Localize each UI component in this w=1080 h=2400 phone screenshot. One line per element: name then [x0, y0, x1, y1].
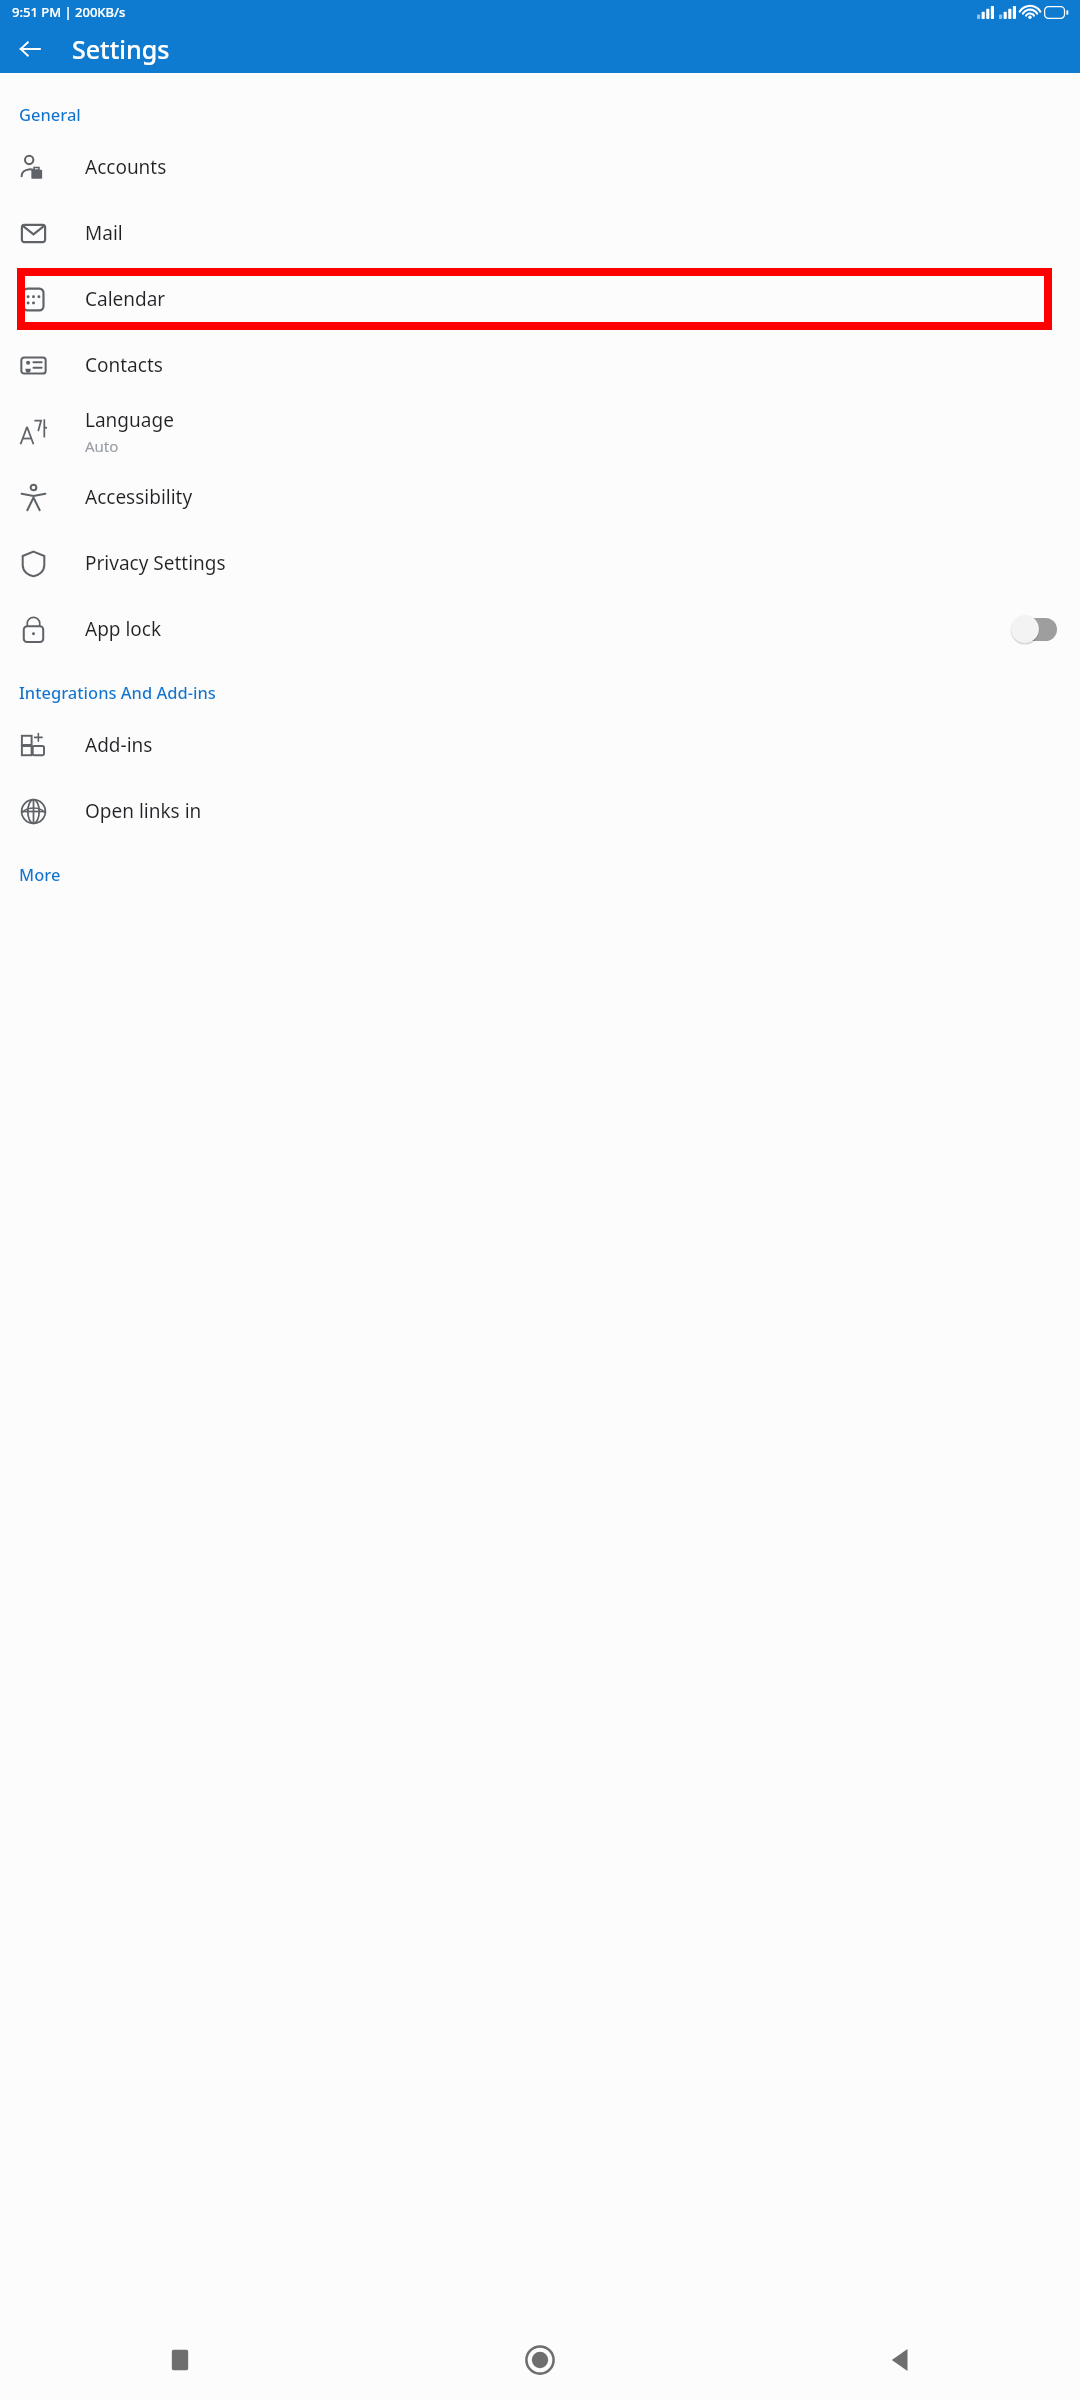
staticText: Auto — [85, 436, 119, 456]
button[interactable]: Home — [360, 2320, 720, 2400]
staticText: Settings — [72, 32, 170, 66]
button[interactable]: Open links in — [0, 778, 1080, 844]
staticText: General — [19, 103, 81, 125]
button[interactable]: Add-ins — [0, 712, 1080, 778]
button[interactable] — [1010, 614, 1058, 644]
staticText: Open links in — [85, 798, 202, 824]
button[interactable]: Recents — [0, 2320, 360, 2400]
staticText: Language — [85, 407, 174, 433]
staticText: More — [19, 863, 61, 885]
button[interactable]: Accounts — [0, 134, 1080, 200]
button[interactable]: Contacts — [0, 332, 1080, 398]
staticText: App lock — [85, 616, 162, 642]
button[interactable]: App lock — [0, 596, 1080, 662]
staticText: Contacts — [85, 352, 163, 378]
staticText: Calendar — [85, 286, 166, 312]
staticText: Mail — [85, 220, 123, 246]
staticText: Add-ins — [85, 732, 153, 758]
staticText: Privacy Settings — [85, 550, 226, 576]
button[interactable]: Calendar — [0, 266, 1080, 332]
staticText: Accounts — [85, 154, 167, 180]
button[interactable]: Mail — [0, 200, 1080, 266]
button[interactable]: Privacy Settings — [0, 530, 1080, 596]
button[interactable]: Back — [8, 27, 52, 71]
staticText: Integrations And Add-ins — [19, 681, 216, 703]
button[interactable]: Language — [0, 398, 1080, 464]
button[interactable]: Back — [720, 2320, 1080, 2400]
staticText: Accessibility — [85, 484, 193, 510]
button[interactable]: Accessibility — [0, 464, 1080, 530]
staticText: 9:51 PM | 200KB/s — [12, 3, 126, 21]
